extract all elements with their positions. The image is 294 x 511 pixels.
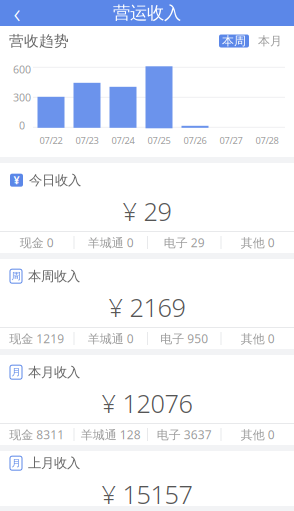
staticText: ¥ 29 bbox=[122, 194, 171, 228]
staticText: 羊城通 128 bbox=[81, 426, 141, 442]
staticText: ¥ 12076 bbox=[101, 386, 192, 420]
button[interactable]: 周 bbox=[0, 259, 294, 349]
button[interactable]: 本月 bbox=[255, 34, 285, 47]
button[interactable]: ¥ bbox=[0, 163, 294, 253]
staticText: 本月收入 bbox=[28, 364, 80, 380]
staticText: ¥ 2169 bbox=[108, 290, 185, 324]
staticText: 羊城通 0 bbox=[88, 330, 134, 346]
staticText: 其他 0 bbox=[241, 426, 275, 442]
staticText: 本周收入 bbox=[28, 268, 80, 284]
staticText: 本月 bbox=[258, 34, 282, 48]
button[interactable]: 本周 bbox=[219, 34, 249, 47]
staticText: 07/23 bbox=[75, 134, 98, 147]
staticText: 07/28 bbox=[255, 134, 278, 147]
staticText: 07/26 bbox=[183, 134, 206, 147]
staticText: 电子 950 bbox=[160, 330, 208, 346]
staticText: 月 bbox=[11, 366, 20, 378]
staticText: 现金 0 bbox=[20, 234, 54, 250]
button[interactable]: 月 bbox=[0, 355, 294, 445]
staticText: ¥ 15157 bbox=[101, 477, 192, 511]
staticText: ‹ bbox=[13, 0, 20, 31]
staticText: 07/24 bbox=[111, 134, 134, 147]
staticText: 月 bbox=[11, 457, 20, 469]
staticText: 300 bbox=[13, 90, 31, 104]
staticText: 电子 29 bbox=[164, 234, 205, 250]
staticText: 现金 8311 bbox=[9, 426, 64, 442]
staticText: ¥ bbox=[13, 173, 19, 187]
button[interactable]: Back bbox=[0, 0, 34, 26]
staticText: 其他 0 bbox=[241, 234, 275, 250]
staticText: 0 bbox=[19, 118, 25, 132]
staticText: 营运收入 bbox=[113, 2, 181, 24]
staticText: 羊城通 0 bbox=[88, 234, 134, 250]
staticText: 周 bbox=[11, 270, 20, 282]
staticText: 本周 bbox=[222, 34, 246, 48]
staticText: 电子 3637 bbox=[157, 426, 212, 442]
staticText: 600 bbox=[13, 62, 31, 76]
button[interactable]: 月 bbox=[0, 451, 294, 506]
staticText: 上月收入 bbox=[28, 455, 80, 471]
staticText: 07/22 bbox=[39, 134, 62, 147]
staticText: 其他 0 bbox=[241, 330, 275, 346]
staticText: 今日收入 bbox=[29, 172, 81, 188]
staticText: 07/27 bbox=[219, 134, 242, 147]
staticText: 现金 1219 bbox=[9, 330, 64, 346]
staticText: 营收趋势 bbox=[9, 32, 69, 50]
staticText: 07/25 bbox=[147, 134, 170, 147]
